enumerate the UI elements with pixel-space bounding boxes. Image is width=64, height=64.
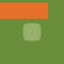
button[interactable] — [0, 0, 48, 19]
